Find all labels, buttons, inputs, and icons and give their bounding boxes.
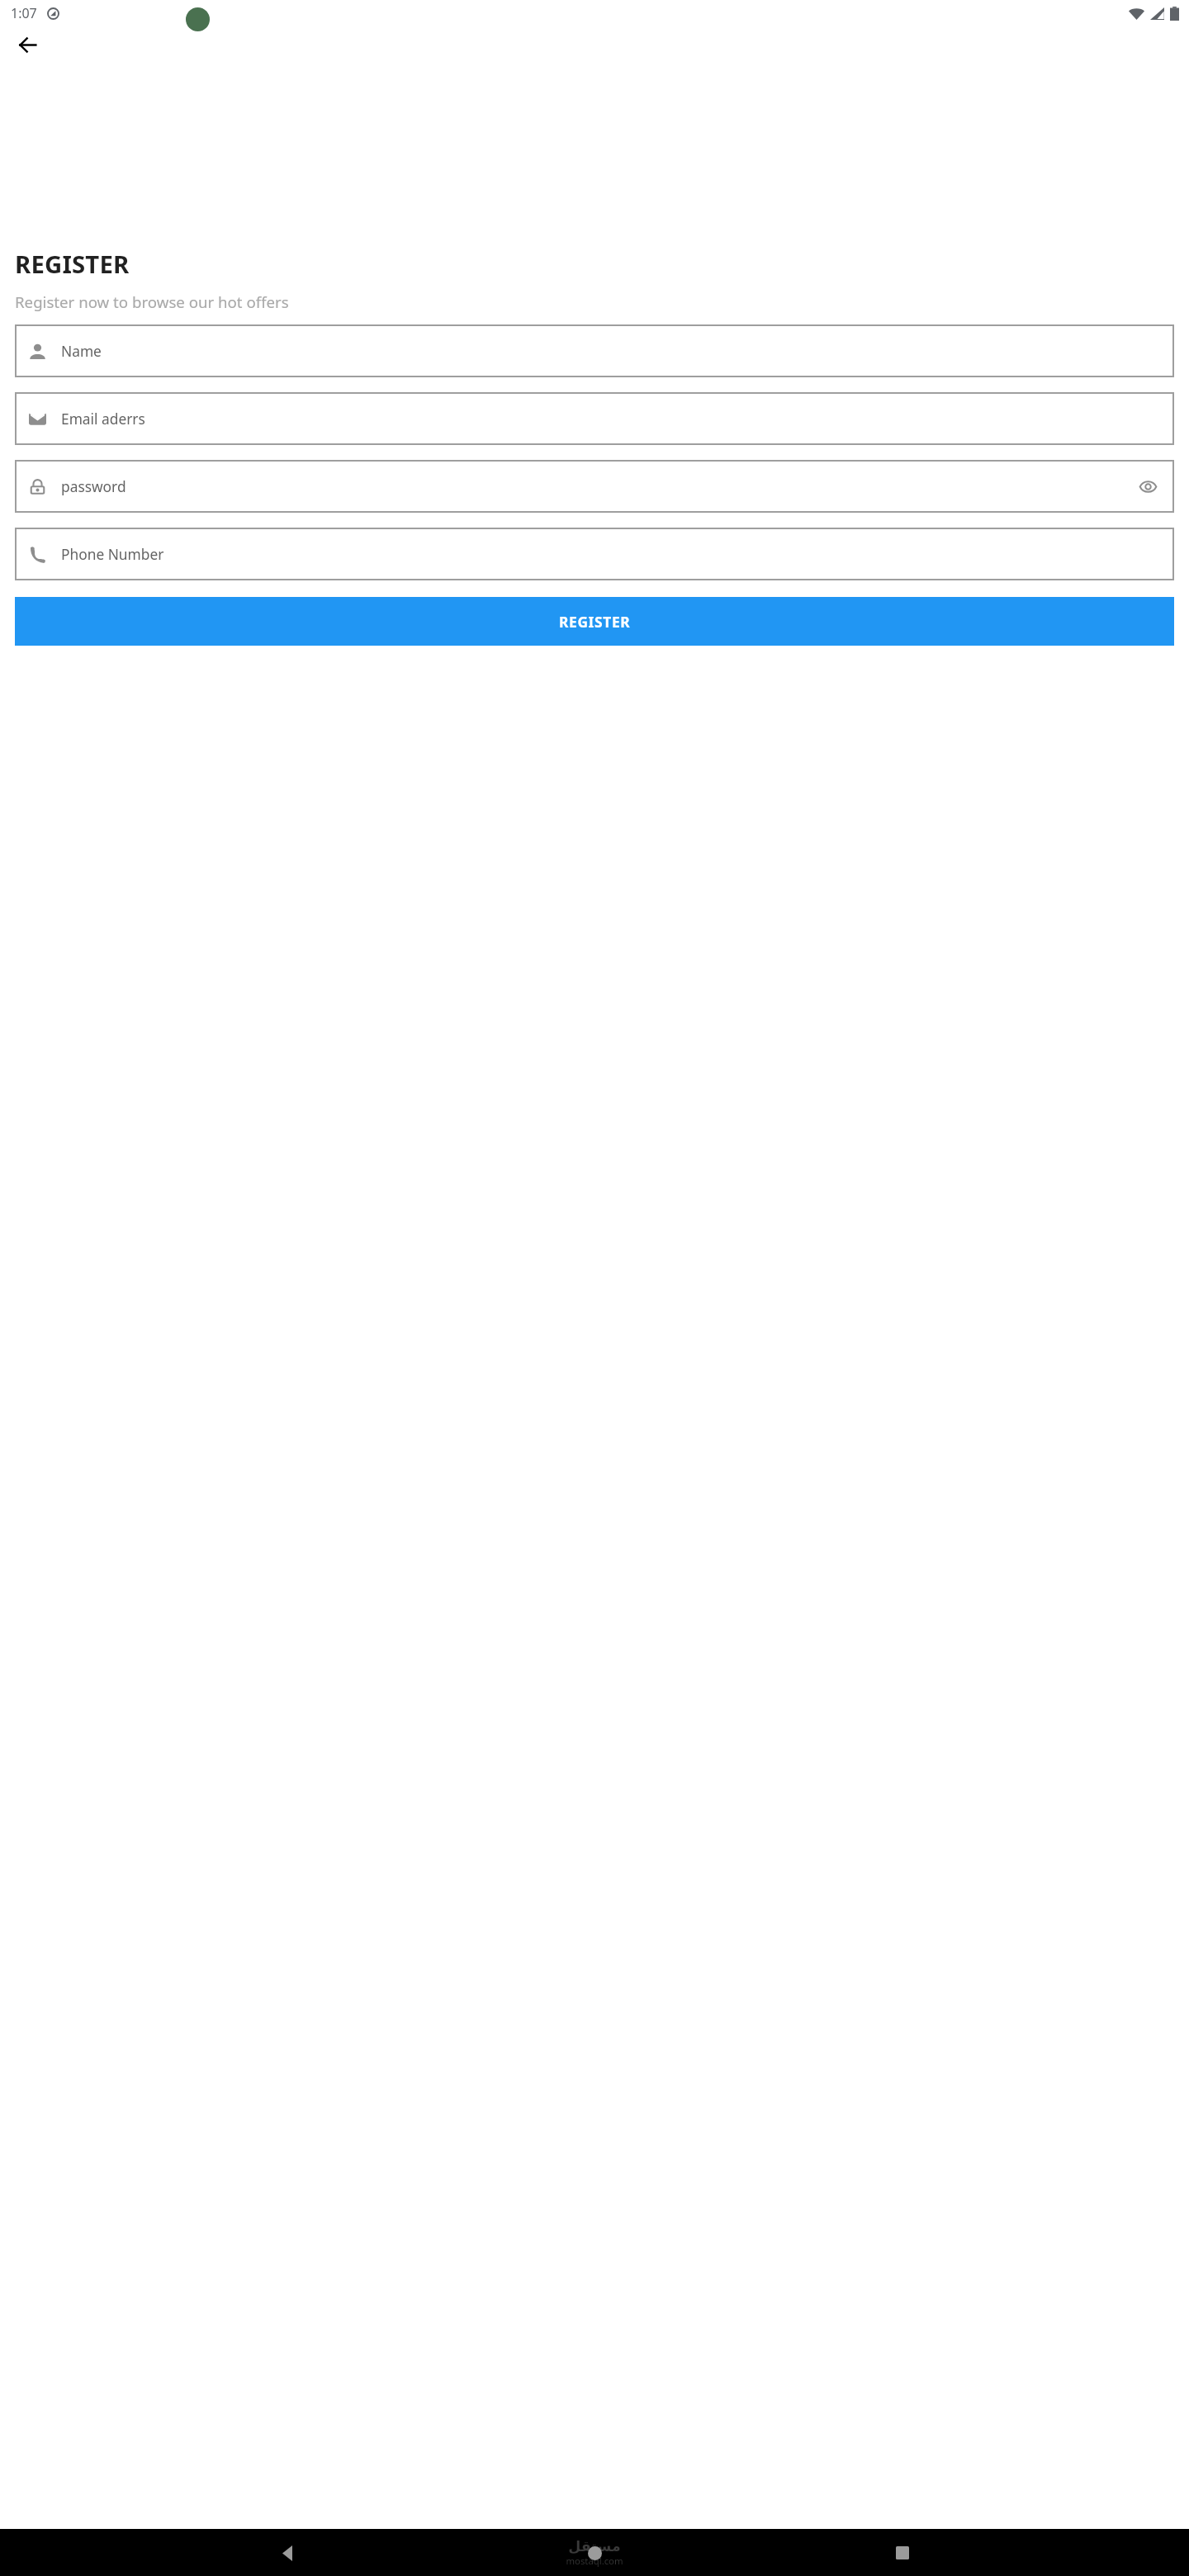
button[interactable]: password xyxy=(15,460,1174,513)
staticText: Name xyxy=(61,341,1174,361)
staticText: Register now to browse our hot offers xyxy=(15,291,289,312)
staticText: REGISTER xyxy=(15,248,130,281)
button[interactable]: Recent apps xyxy=(882,2532,923,2574)
button[interactable]: REGISTER xyxy=(15,597,1174,646)
button[interactable]: Home xyxy=(574,2532,615,2574)
button[interactable]: Back xyxy=(16,33,40,57)
staticText: مستقل xyxy=(568,2538,621,2555)
button[interactable]: Name xyxy=(15,324,1174,377)
button[interactable]: Show password xyxy=(1133,471,1163,502)
staticText: Phone Number xyxy=(61,544,1174,564)
button[interactable]: Email aderrs xyxy=(15,392,1174,445)
staticText: Email aderrs xyxy=(61,409,1174,429)
button[interactable]: Back xyxy=(267,2532,308,2574)
staticText: 1:07 xyxy=(11,4,37,22)
staticText: REGISTER xyxy=(559,612,631,632)
button[interactable]: Phone Number xyxy=(15,528,1174,580)
staticText: mostaql.com xyxy=(566,2555,623,2567)
staticText: password xyxy=(61,476,1133,496)
